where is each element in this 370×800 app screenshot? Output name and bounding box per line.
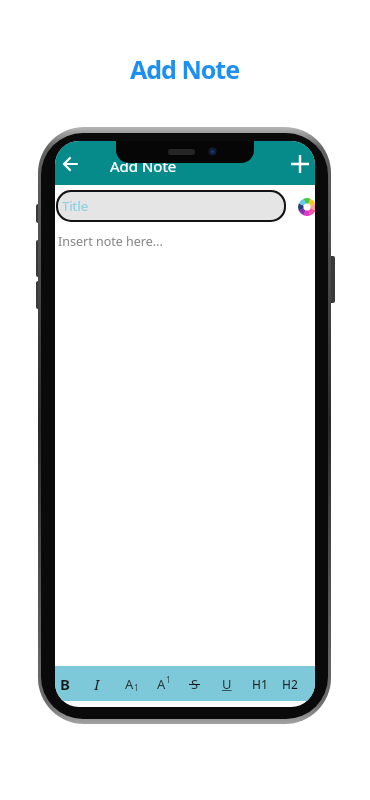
button[interactable]: A (148, 666, 174, 701)
button[interactable]: I (84, 666, 110, 701)
staticText: U (222, 675, 232, 693)
staticText: B (60, 674, 70, 694)
staticText: A (157, 675, 166, 693)
button[interactable]: A (116, 666, 142, 701)
button[interactable]: H1 (247, 666, 273, 701)
staticText: Title (62, 197, 88, 215)
button[interactable] (298, 198, 315, 216)
button[interactable] (288, 152, 312, 176)
button[interactable]: S (181, 666, 207, 701)
button[interactable]: H2 (277, 666, 303, 701)
button[interactable]: U (214, 666, 240, 701)
staticText: Insert note here... (58, 233, 163, 250)
button[interactable]: Title (58, 192, 284, 220)
staticText: Add Note (130, 52, 240, 86)
button[interactable]: B (55, 666, 78, 701)
staticText: A (125, 675, 134, 693)
staticText: H2 (282, 676, 298, 692)
button[interactable] (59, 152, 83, 176)
staticText: H1 (252, 676, 268, 692)
staticText: 1 (166, 674, 171, 685)
staticText: S (191, 675, 199, 693)
staticText: 1 (134, 682, 139, 693)
staticText: I (94, 674, 100, 694)
staticText: Add Note (110, 156, 177, 176)
